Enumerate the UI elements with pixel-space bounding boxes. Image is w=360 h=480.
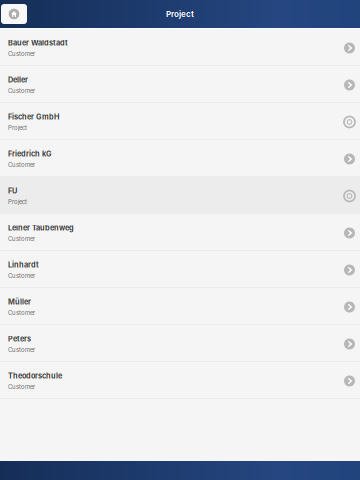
button[interactable]: Bauer Waldstadt — [0, 29, 360, 66]
button[interactable]: Home — [1, 4, 27, 24]
button[interactable]: Müller — [0, 288, 360, 325]
button[interactable]: Leiner Taubenweg — [0, 214, 360, 251]
staticText: Fischer GmbH — [8, 112, 59, 121]
button[interactable]: Theodorschule — [0, 362, 360, 399]
staticText: Linhardt — [8, 260, 39, 269]
staticText: Project — [8, 198, 27, 206]
button[interactable]: Deller — [0, 66, 360, 103]
staticText: Customer — [8, 161, 35, 169]
staticText: Customer — [8, 309, 35, 317]
staticText: Deller — [8, 75, 28, 84]
staticText: Project — [166, 9, 194, 19]
staticText: FU — [8, 186, 17, 195]
button[interactable]: Fischer GmbH — [0, 103, 360, 140]
staticText: Customer — [8, 50, 35, 58]
staticText: Project — [8, 124, 27, 132]
staticText: Customer — [8, 383, 35, 391]
staticText: Peters — [8, 334, 31, 343]
button[interactable]: Friedrich kG — [0, 140, 360, 177]
staticText: Theodorschule — [8, 371, 62, 380]
staticText: Friedrich kG — [8, 149, 52, 158]
staticText: Bauer Waldstadt — [8, 38, 68, 47]
staticText: Customer — [8, 272, 35, 280]
staticText: Müller — [8, 297, 31, 306]
staticText: Customer — [8, 87, 35, 95]
button[interactable]: Peters — [0, 325, 360, 362]
staticText: Customer — [8, 235, 35, 243]
staticText: Customer — [8, 346, 35, 354]
button[interactable]: FU — [0, 177, 360, 214]
button[interactable]: Linhardt — [0, 251, 360, 288]
staticText: Leiner Taubenweg — [8, 223, 74, 232]
